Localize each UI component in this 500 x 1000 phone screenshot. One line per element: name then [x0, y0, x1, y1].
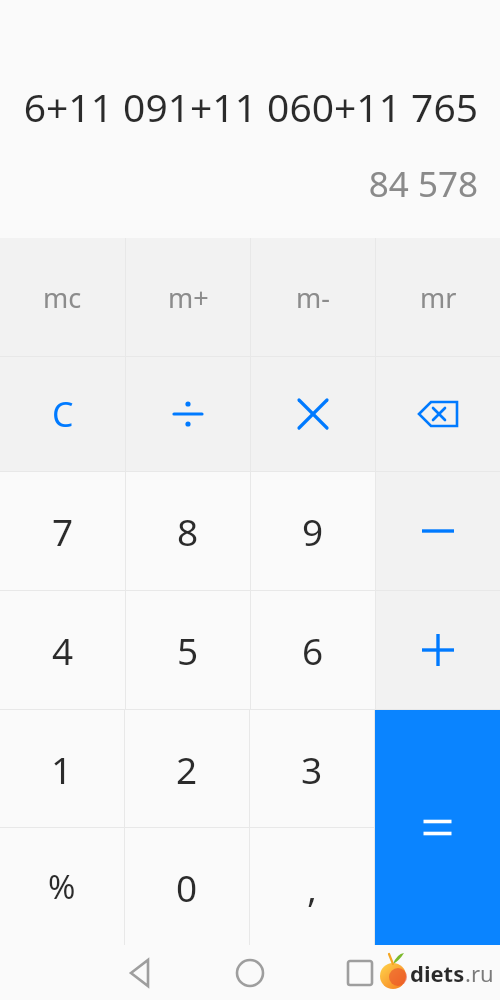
button[interactable]: Recents [337, 950, 383, 996]
staticText: 9 [302, 506, 324, 556]
button[interactable]: Backspace [376, 357, 500, 471]
button[interactable]: 2 [125, 710, 249, 827]
staticText: % [48, 864, 76, 909]
button[interactable]: , [250, 828, 374, 945]
staticText: mr [420, 279, 457, 316]
staticText: 4 [52, 625, 74, 675]
staticText: mc [43, 279, 82, 316]
button[interactable]: 8 [126, 472, 250, 590]
staticText: , [307, 862, 317, 912]
button[interactable]: 4 [0, 591, 125, 709]
button[interactable]: Back [117, 950, 163, 996]
button[interactable]: mr [376, 238, 500, 356]
button[interactable]: mc [0, 238, 125, 356]
button[interactable]: Minus [376, 472, 500, 590]
staticText: .ru [465, 958, 494, 988]
staticText: 5 [177, 625, 199, 675]
staticText: 3 [301, 744, 323, 794]
staticText: 0 [176, 862, 198, 912]
button[interactable]: Plus [376, 591, 500, 709]
button[interactable]: Multiply [251, 357, 375, 471]
staticText: diets [410, 958, 465, 988]
staticText: 1 [51, 744, 73, 794]
button[interactable]: 3 [250, 710, 374, 827]
staticText: 2 [176, 744, 198, 794]
button[interactable]: C [0, 357, 125, 471]
button[interactable]: Home [227, 950, 273, 996]
button[interactable]: 1 [0, 710, 124, 827]
button[interactable]: m+ [126, 238, 250, 356]
button[interactable]: Equals [375, 710, 500, 945]
staticText: 7 [52, 506, 74, 556]
staticText: 6 [302, 625, 324, 675]
button[interactable]: 0 [125, 828, 249, 945]
button[interactable]: 9 [251, 472, 375, 590]
button[interactable]: % [0, 828, 124, 945]
button[interactable]: 5 [126, 591, 250, 709]
staticText: 8 [177, 506, 199, 556]
button[interactable]: 6 [251, 591, 375, 709]
staticText: 6+11 091+11 060+11 765 [0, 80, 478, 133]
button[interactable]: Divide [126, 357, 250, 471]
button[interactable]: m- [251, 238, 375, 356]
staticText: 84 578 [0, 160, 478, 208]
staticText: m- [296, 279, 330, 316]
staticText: C [52, 391, 74, 437]
staticText: m+ [168, 279, 209, 316]
button[interactable]: 7 [0, 472, 125, 590]
